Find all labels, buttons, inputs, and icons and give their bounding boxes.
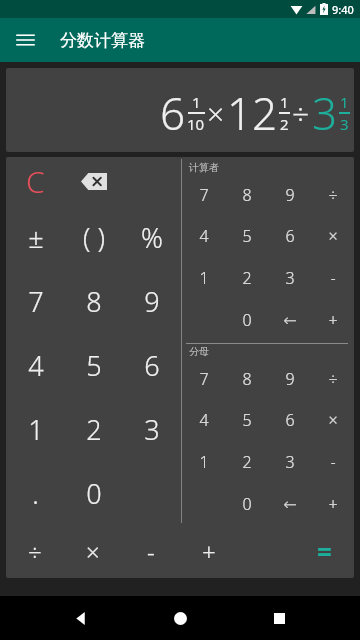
button[interactable]: + [180, 525, 238, 578]
button[interactable]: % [123, 205, 181, 269]
button[interactable]: C [6, 157, 65, 205]
button[interactable]: 8 [65, 269, 123, 333]
staticText: 5 [242, 409, 252, 431]
button[interactable]: Recents [261, 600, 297, 636]
staticText: 3 [312, 83, 338, 143]
button[interactable]: 7 [182, 358, 225, 399]
button[interactable]: - [122, 525, 180, 578]
staticText: ← [283, 495, 297, 514]
staticText: 9 [285, 368, 295, 390]
staticText: 7 [199, 184, 209, 206]
button[interactable]: 9 [123, 269, 181, 333]
button[interactable]: 9 [268, 174, 311, 215]
button[interactable]: ÷ [311, 358, 354, 399]
button[interactable]: 2 [65, 397, 123, 461]
button[interactable]: 6 [268, 399, 311, 441]
staticText: 6 [160, 83, 186, 143]
staticText: 计算者 [189, 161, 219, 174]
staticText: C [26, 161, 45, 202]
button[interactable]: Menu [10, 25, 40, 55]
button[interactable]: 8 [225, 358, 268, 399]
button[interactable]: × [64, 525, 122, 578]
button[interactable]: 6 [123, 333, 181, 397]
button[interactable]: Backspace [65, 157, 123, 205]
staticText: = [317, 534, 332, 569]
staticText: × [328, 409, 338, 431]
staticText: 9 [144, 283, 160, 320]
button[interactable]: + [311, 483, 354, 525]
button[interactable]: + [311, 299, 354, 341]
button[interactable]: Back [63, 600, 99, 636]
staticText: 2 [280, 114, 289, 134]
staticText: 4 [199, 409, 209, 431]
staticText: 2 [242, 451, 252, 473]
button[interactable]: 4 [182, 399, 225, 441]
button[interactable]: 7 [182, 174, 225, 215]
button[interactable]: 9 [268, 358, 311, 399]
staticText: - [330, 267, 336, 289]
button[interactable]: 0 [65, 461, 123, 525]
button[interactable]: 4 [182, 215, 225, 257]
staticText: + [328, 493, 338, 515]
staticText: 5 [242, 225, 252, 247]
staticText: 6 [144, 347, 160, 384]
staticText: 分母 [189, 345, 209, 358]
button[interactable]: ( ) [65, 205, 123, 269]
staticText: 分数计算器 [60, 30, 145, 51]
button[interactable]: 2 [225, 257, 268, 299]
button[interactable]: ÷ [311, 174, 354, 215]
button[interactable]: 2 [225, 441, 268, 483]
button[interactable]: 4 [6, 333, 65, 397]
staticText: 9:40 [332, 2, 354, 17]
staticText: + [328, 309, 338, 331]
button[interactable]: 0 [225, 483, 268, 525]
button[interactable]: 1 [182, 257, 225, 299]
button[interactable]: 3 [123, 397, 181, 461]
staticText: ÷ [28, 535, 42, 568]
button[interactable]: 6 [268, 215, 311, 257]
staticText: 7 [199, 368, 209, 390]
staticText: 9 [285, 184, 295, 206]
button[interactable]: ± [6, 205, 65, 269]
button[interactable]: ← [268, 299, 311, 341]
button[interactable]: 3 [268, 441, 311, 483]
staticText: 0 [242, 309, 252, 331]
staticText: 4 [199, 225, 209, 247]
staticText: 2 [86, 411, 102, 448]
button[interactable]: 0 [225, 299, 268, 341]
button[interactable]: 5 [65, 333, 123, 397]
button[interactable]: × [311, 215, 354, 257]
staticText: 1 [199, 451, 209, 473]
staticText: ÷ [328, 184, 338, 206]
staticText: 4 [28, 347, 44, 384]
staticText: 10 [187, 114, 205, 134]
staticText: - [330, 451, 336, 473]
staticText: 3 [285, 267, 295, 289]
staticText: 7 [28, 283, 44, 320]
staticText: 6 [285, 409, 295, 431]
button[interactable]: 7 [6, 269, 65, 333]
button[interactable]: ÷ [6, 525, 64, 578]
button[interactable]: - [311, 441, 354, 483]
staticText: 1 [28, 411, 44, 448]
button[interactable]: 1 [182, 441, 225, 483]
button[interactable]: 1 [6, 397, 65, 461]
button[interactable]: × [311, 399, 354, 441]
button[interactable]: 8 [225, 174, 268, 215]
button[interactable]: = [294, 525, 354, 578]
button[interactable]: 3 [268, 257, 311, 299]
staticText: 8 [242, 368, 252, 390]
button[interactable]: . [6, 461, 65, 525]
staticText: × [86, 535, 100, 568]
button[interactable]: ← [268, 483, 311, 525]
button[interactable]: - [311, 257, 354, 299]
staticText: 1 [199, 267, 209, 289]
button[interactable]: 5 [225, 399, 268, 441]
staticText: 8 [242, 184, 252, 206]
staticText: . [32, 475, 39, 512]
button[interactable]: 5 [225, 215, 268, 257]
button[interactable]: 6 [6, 68, 354, 152]
staticText: - [147, 535, 155, 568]
staticText: 3 [144, 411, 160, 448]
button[interactable]: Home [162, 600, 198, 636]
